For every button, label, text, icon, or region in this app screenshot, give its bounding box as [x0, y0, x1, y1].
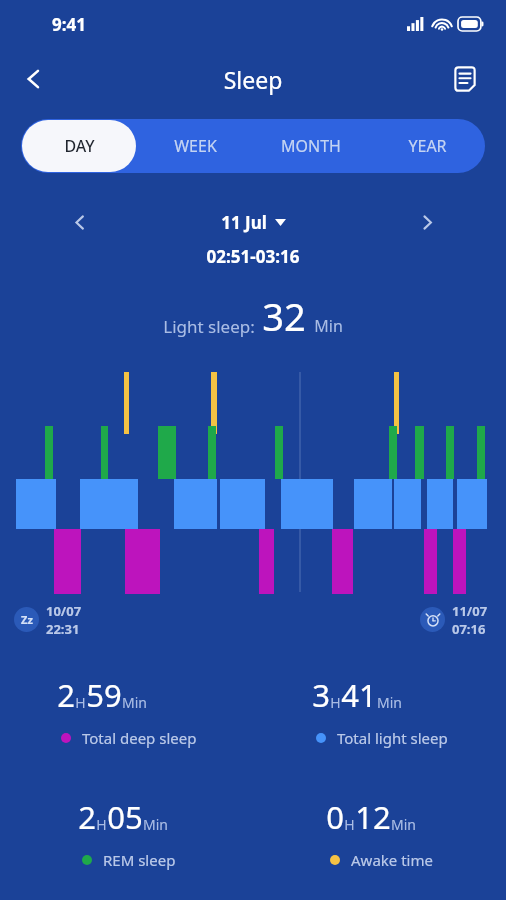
staticText: WEEK	[174, 135, 217, 157]
staticText: H	[330, 693, 341, 712]
button[interactable]: 2	[78, 796, 176, 870]
staticText: 2	[78, 796, 96, 838]
staticText: Zz	[21, 612, 33, 627]
staticText: 41	[341, 674, 377, 716]
staticText: 12	[355, 796, 391, 838]
staticText: 10/07	[46, 602, 82, 620]
staticText: Min	[314, 315, 343, 337]
button[interactable]: WEEK	[137, 119, 253, 173]
staticText: Total light sleep	[337, 728, 448, 748]
staticText: 2	[57, 674, 75, 716]
staticText: 22:31	[46, 620, 80, 636]
staticText: 3	[312, 674, 330, 716]
staticText: Min	[143, 815, 168, 834]
staticText: 02:51-03:16	[0, 245, 506, 268]
staticText: 59	[86, 674, 122, 716]
button[interactable]: MONTH	[253, 119, 369, 173]
staticText: Min	[377, 693, 402, 712]
staticText: H	[344, 815, 355, 834]
button[interactable]: YEAR	[369, 119, 485, 173]
staticText: 11 Jul	[221, 211, 267, 234]
staticText: YEAR	[408, 135, 447, 157]
button[interactable]: DAY	[22, 120, 136, 172]
staticText: Sleep	[0, 64, 506, 95]
button[interactable]: 2	[57, 674, 197, 748]
button[interactable]: Back	[10, 55, 58, 103]
button[interactable]: 3	[312, 674, 448, 748]
button[interactable]: Next day	[410, 205, 444, 239]
staticText: 9:41	[52, 13, 86, 36]
staticText: Awake time	[351, 850, 433, 870]
staticText: H	[75, 693, 86, 712]
staticText: Min	[391, 815, 416, 834]
staticText: Total deep sleep	[82, 728, 197, 748]
staticText: 11/07	[452, 602, 488, 620]
staticText: H	[96, 815, 107, 834]
staticText: 05	[107, 796, 143, 838]
staticText: DAY	[64, 135, 95, 157]
staticText: MONTH	[281, 135, 341, 157]
staticText: 0	[326, 796, 344, 838]
staticText: 07:16	[452, 620, 486, 636]
button[interactable]: 0	[326, 796, 433, 870]
staticText: Min	[122, 693, 147, 712]
staticText: REM sleep	[103, 850, 176, 870]
button[interactable]: Notes	[442, 56, 488, 102]
staticText: Light sleep:	[163, 315, 255, 338]
button[interactable]: 11 Jul	[221, 211, 286, 234]
staticText: 32	[262, 290, 306, 342]
button[interactable]: Previous day	[62, 205, 96, 239]
